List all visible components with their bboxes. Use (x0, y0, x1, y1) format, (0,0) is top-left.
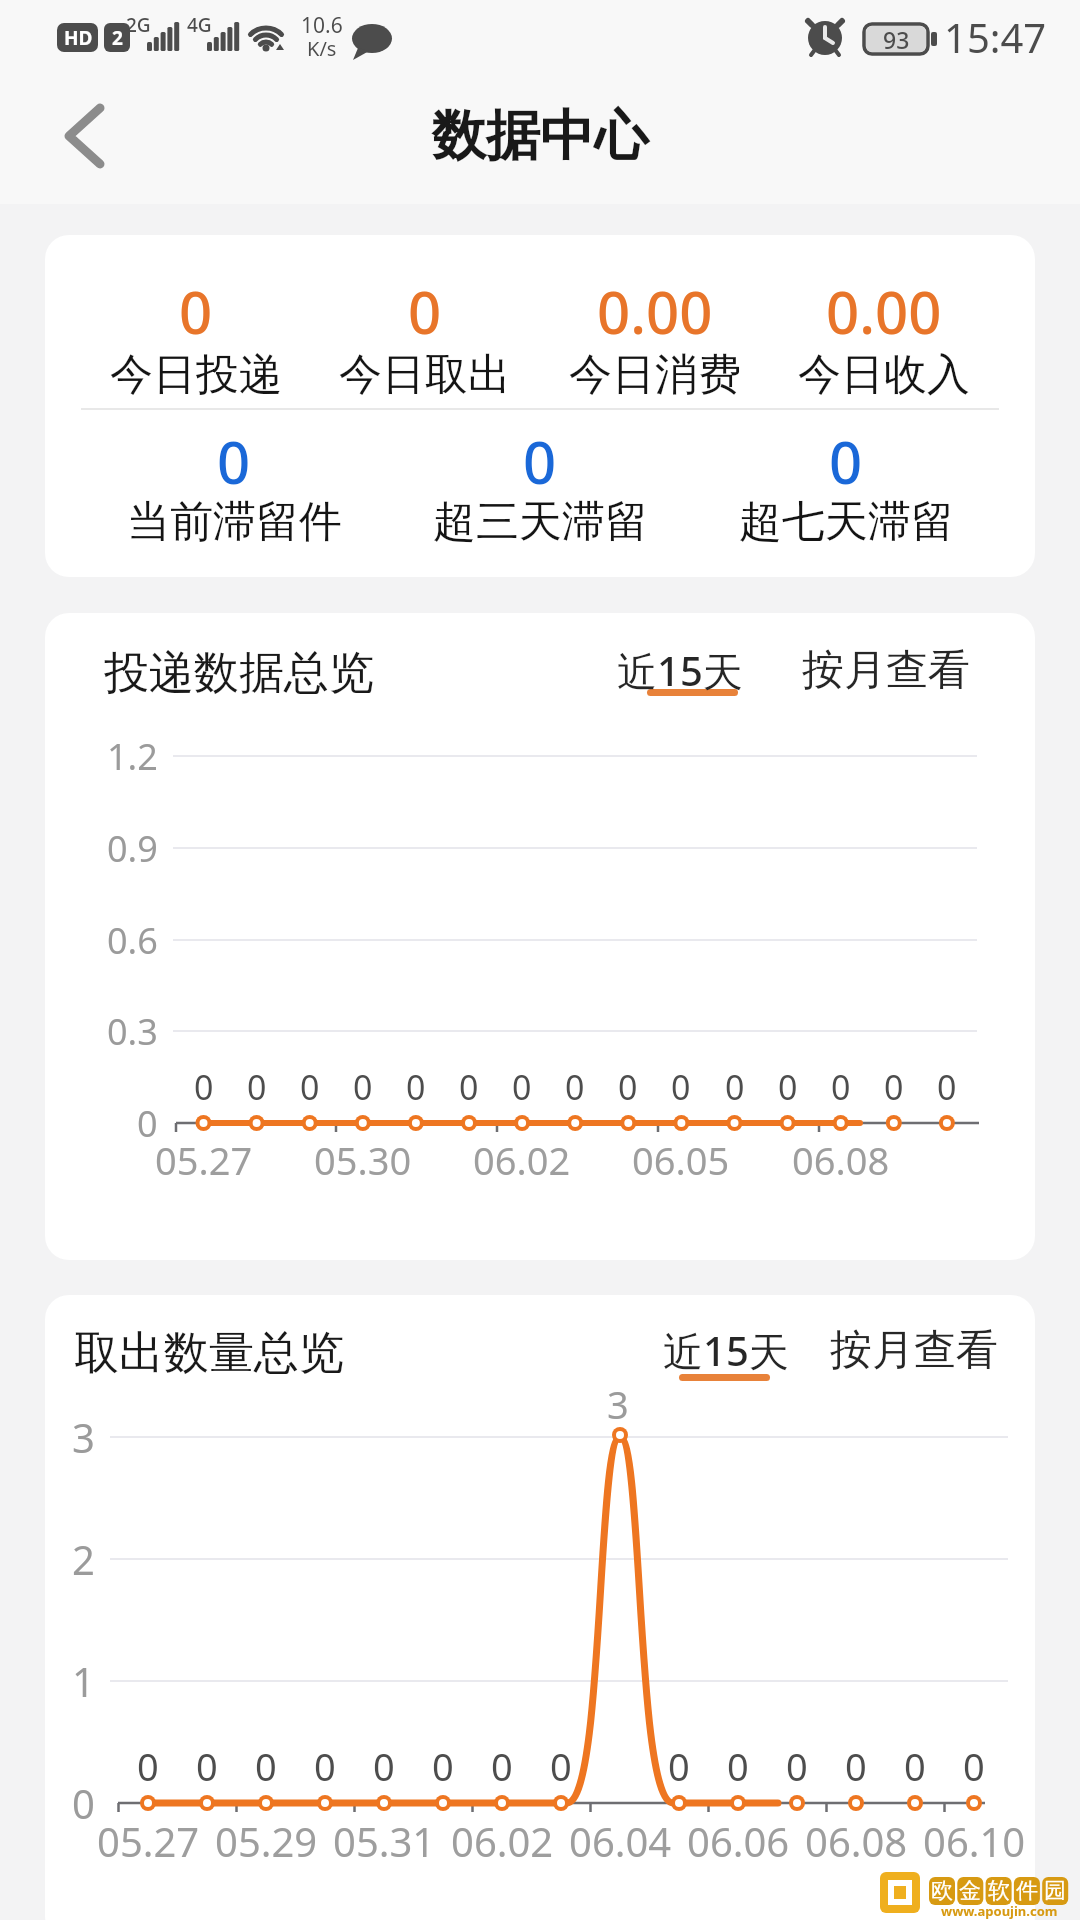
staticText: 1 (72, 1654, 95, 1708)
staticText: 0 (565, 1064, 585, 1110)
staticText: 10.6 (301, 11, 343, 40)
staticText: 0 (786, 1740, 808, 1792)
button[interactable]: 按月查看 (794, 1305, 1034, 1395)
staticText: 06.08 (805, 1814, 908, 1868)
staticText: www.apoujin.com (941, 1902, 1058, 1920)
button[interactable]: 当前滞留件 (0, 477, 494, 567)
staticText: 0 (72, 1776, 95, 1830)
staticText: 超三天滞留 (433, 495, 648, 549)
staticText: 06.04 (569, 1814, 672, 1868)
staticText: 0 (778, 1064, 798, 1110)
staticText: 05.27 (97, 1814, 200, 1868)
staticText: 0 (491, 1740, 513, 1792)
staticText: 0 (217, 422, 251, 501)
staticText: K/s (307, 35, 337, 62)
staticText: 2 (72, 1532, 95, 1586)
staticText: 0 (137, 1740, 159, 1792)
staticText: 2G (126, 12, 151, 38)
staticText: 今日投递 (110, 348, 282, 402)
staticText: 0 (671, 1064, 691, 1110)
staticText: 投递数据总览 (104, 645, 374, 702)
staticText: 0 (963, 1740, 985, 1792)
staticText: 0 (194, 1064, 214, 1110)
staticText: 2 (112, 25, 123, 51)
staticText: 0 (408, 272, 442, 351)
button[interactable]: 按月查看 (766, 625, 1006, 715)
staticText: 按月查看 (830, 1324, 998, 1377)
staticText: 园 (1044, 1877, 1066, 1905)
staticText: 06.02 (473, 1134, 571, 1186)
staticText: 软 (988, 1877, 1010, 1905)
staticText: 件 (1016, 1877, 1038, 1905)
staticText: 0 (668, 1740, 690, 1792)
staticText: 按月查看 (802, 644, 970, 697)
staticText: 0 (137, 1099, 158, 1148)
staticText: 0 (459, 1064, 479, 1110)
staticText: 0.9 (107, 824, 158, 873)
staticText: 06.08 (792, 1134, 890, 1186)
staticText: 今日取出 (339, 348, 511, 402)
staticText: 金 (959, 1877, 981, 1905)
staticText: 数据中心 (432, 102, 648, 170)
staticText: 0 (179, 272, 213, 351)
staticText: 0.6 (107, 916, 158, 965)
staticText: 欧 (931, 1877, 953, 1905)
staticText: 0 (831, 1064, 851, 1110)
staticText: 0 (255, 1740, 277, 1792)
staticText: 3 (607, 1378, 629, 1430)
button[interactable]: 近15天 (580, 625, 780, 715)
staticText: 0 (725, 1064, 745, 1110)
button[interactable]: 今日收入 (624, 330, 1080, 420)
staticText: 今日消费 (569, 348, 741, 402)
staticText: 0 (353, 1064, 373, 1110)
staticText: 06.06 (687, 1814, 790, 1868)
staticText: 今日收入 (798, 348, 970, 402)
staticText: 15:47 (944, 10, 1047, 64)
staticText: 0 (523, 422, 557, 501)
staticText: 05.27 (155, 1134, 253, 1186)
staticText: 0 (937, 1064, 957, 1110)
staticText: 近15天 (663, 1323, 789, 1378)
button[interactable]: 超七天滞留 (586, 477, 1080, 567)
button[interactable]: 近15天 (626, 1305, 826, 1395)
staticText: 06.10 (923, 1814, 1026, 1868)
staticText: HD (64, 25, 93, 51)
staticText: 取出数量总览 (74, 1325, 344, 1382)
button[interactable]: 今日取出 (165, 330, 685, 420)
staticText: 06.05 (632, 1134, 730, 1186)
staticText: 0 (247, 1064, 267, 1110)
staticText: 0.3 (107, 1007, 158, 1056)
button[interactable] (45, 95, 130, 180)
staticText: 0.00 (826, 272, 942, 351)
staticText: 超七天滞留 (739, 495, 954, 549)
staticText: 0.00 (597, 272, 713, 351)
staticText: 4G (187, 12, 212, 38)
staticText: 06.02 (451, 1814, 554, 1868)
staticText: 0 (904, 1740, 926, 1792)
button[interactable]: 今日消费 (395, 330, 915, 420)
staticText: 0 (884, 1064, 904, 1110)
staticText: 近15天 (617, 643, 743, 698)
staticText: 0 (314, 1740, 336, 1792)
staticText: 0 (829, 422, 863, 501)
staticText: 05.31 (333, 1814, 436, 1868)
staticText: 3 (72, 1410, 95, 1464)
staticText: 0 (373, 1740, 395, 1792)
staticText: 0 (550, 1740, 572, 1792)
staticText: 0 (406, 1064, 426, 1110)
staticText: 当前滞留件 (127, 495, 342, 549)
staticText: 1.2 (107, 732, 158, 781)
staticText: 05.30 (314, 1134, 412, 1186)
staticText: 0 (727, 1740, 749, 1792)
staticText: 0 (845, 1740, 867, 1792)
staticText: 93 (883, 24, 910, 55)
button[interactable]: 今日投递 (0, 330, 456, 420)
staticText: 05.29 (215, 1814, 318, 1868)
staticText: 0 (618, 1064, 638, 1110)
staticText: 0 (512, 1064, 532, 1110)
button[interactable]: 超三天滞留 (280, 477, 800, 567)
staticText: 0 (196, 1740, 218, 1792)
staticText: 0 (432, 1740, 454, 1792)
staticText: 0 (300, 1064, 320, 1110)
